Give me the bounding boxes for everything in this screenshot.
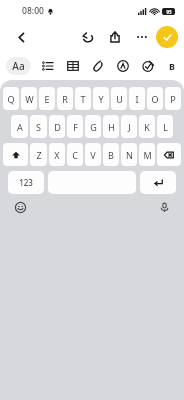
staticText: X xyxy=(54,149,60,161)
button[interactable]: Bulleted list xyxy=(40,58,56,74)
staticText: R xyxy=(62,93,68,105)
staticText: E xyxy=(44,93,50,105)
staticText: P xyxy=(170,93,176,105)
button[interactable]: More options xyxy=(130,25,154,49)
staticText: A xyxy=(17,121,23,133)
staticText: 08:00 xyxy=(22,5,44,17)
button[interactable]: O xyxy=(147,87,163,110)
button[interactable]: F xyxy=(67,115,83,138)
staticText: V xyxy=(90,149,96,161)
button[interactable]: Done xyxy=(156,26,178,48)
button[interactable]: D xyxy=(49,115,65,138)
staticText: K xyxy=(144,121,150,133)
staticText: C xyxy=(72,149,78,161)
button[interactable]: L xyxy=(157,115,173,138)
button[interactable]: X xyxy=(49,143,65,166)
staticText: 95 xyxy=(166,9,172,15)
button[interactable]: V xyxy=(85,143,101,166)
button[interactable]: I xyxy=(129,87,145,110)
staticText: U xyxy=(116,93,123,105)
staticText: J xyxy=(128,121,131,133)
button[interactable]: K xyxy=(139,115,155,138)
button[interactable]: N xyxy=(121,143,137,166)
staticText: T xyxy=(80,93,86,105)
button[interactable]: P xyxy=(165,87,181,110)
button[interactable]: B xyxy=(103,143,119,166)
button[interactable]: H xyxy=(103,115,119,138)
staticText: Z xyxy=(36,149,42,161)
button[interactable]: Q xyxy=(3,87,19,110)
button[interactable]: A xyxy=(11,115,28,138)
staticText: D xyxy=(54,121,61,133)
button[interactable]: Draw xyxy=(115,58,131,74)
button[interactable]: Z xyxy=(30,143,47,166)
button[interactable]: S xyxy=(30,115,47,138)
button[interactable]: T xyxy=(75,87,91,110)
staticText: H xyxy=(108,121,115,133)
button[interactable]: AI assist xyxy=(140,58,156,74)
button[interactable]: Voice input xyxy=(156,199,172,215)
button[interactable]: Aa xyxy=(6,57,31,75)
button[interactable]: Emoji xyxy=(12,199,28,215)
staticText: L xyxy=(163,121,168,133)
button[interactable]: B xyxy=(165,59,179,73)
button[interactable]: J xyxy=(121,115,137,138)
button[interactable]: R xyxy=(57,87,73,110)
button[interactable]: Y xyxy=(93,87,109,110)
staticText: N xyxy=(126,149,133,161)
staticText: B xyxy=(169,60,175,72)
button[interactable]: 123 xyxy=(8,171,44,194)
staticText: I xyxy=(135,93,139,105)
staticText: G xyxy=(90,121,97,133)
staticText: F xyxy=(73,121,78,133)
button[interactable]: C xyxy=(67,143,83,166)
staticText: Aa xyxy=(12,59,25,73)
button[interactable]: G xyxy=(85,115,101,138)
button[interactable]: Back xyxy=(10,26,32,48)
button[interactable]: W xyxy=(21,87,37,110)
button[interactable]: Space xyxy=(48,171,136,194)
button[interactable]: Undo xyxy=(76,25,100,49)
staticText: W xyxy=(25,93,34,105)
button[interactable]: M xyxy=(139,143,155,166)
button[interactable]: Attach file xyxy=(90,58,106,74)
button[interactable]: E xyxy=(39,87,55,110)
staticText: 123 xyxy=(19,177,33,188)
staticText: B xyxy=(108,149,114,161)
button[interactable]: Table xyxy=(65,58,81,74)
button[interactable]: Enter xyxy=(140,171,176,194)
staticText: Q xyxy=(7,93,15,105)
staticText: Y xyxy=(98,93,104,105)
staticText: S xyxy=(36,121,41,133)
button[interactable]: Share xyxy=(103,25,127,49)
button[interactable]: Backspace xyxy=(157,143,181,166)
staticText: O xyxy=(151,93,159,105)
button[interactable]: U xyxy=(111,87,127,110)
button[interactable]: Shift xyxy=(3,143,28,166)
staticText: M xyxy=(143,149,152,161)
